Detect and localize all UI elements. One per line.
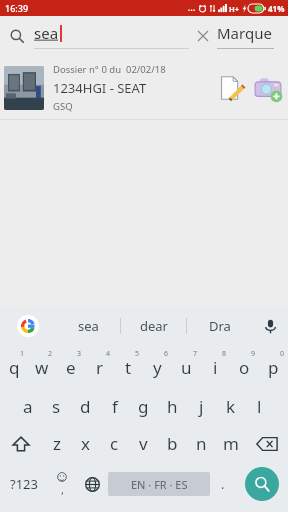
button[interactable]: y	[143, 347, 172, 388]
staticText: n	[196, 432, 207, 455]
staticText: t	[125, 356, 132, 379]
button[interactable]: x	[71, 425, 100, 462]
button[interactable]: Change language	[76, 462, 108, 506]
button[interactable]: b	[158, 425, 187, 462]
button[interactable]: z	[42, 425, 71, 462]
staticText: k	[226, 395, 236, 418]
staticText: o	[239, 356, 250, 379]
button[interactable]: Dossier n° 0 du 02/02/18	[0, 56, 288, 119]
button[interactable]: sea	[34, 23, 189, 49]
button[interactable]: r	[85, 347, 114, 388]
button[interactable]: t	[114, 347, 143, 388]
button[interactable]: Backspace	[245, 425, 288, 462]
button[interactable]: Clear	[189, 22, 217, 50]
staticText: ,	[61, 482, 64, 497]
staticText: Dossier n° 0 du 02/02/18	[53, 63, 166, 76]
staticText: f	[112, 395, 118, 418]
staticText: sea	[78, 317, 99, 335]
staticText: ?123	[10, 475, 38, 493]
staticText: 1234HGI - SEAT	[53, 79, 147, 97]
button[interactable]: j	[187, 388, 216, 425]
staticText: 2	[48, 349, 53, 359]
staticText: .	[221, 475, 225, 493]
staticText: x	[81, 432, 90, 455]
staticText: EN · FR · ES	[131, 477, 188, 492]
staticText: a	[23, 395, 33, 418]
button[interactable]: Voice input	[252, 307, 288, 345]
staticText: h	[167, 395, 178, 418]
staticText: u	[181, 356, 192, 379]
staticText: 8	[222, 349, 227, 359]
button[interactable]: Add photo	[250, 70, 286, 106]
button[interactable]: Search	[0, 19, 34, 53]
staticText: j	[199, 395, 204, 418]
staticText: 5	[135, 349, 140, 359]
button[interactable]: EN · FR · ES	[108, 472, 210, 496]
button[interactable]: h	[158, 388, 187, 425]
button[interactable]: f	[100, 388, 129, 425]
button[interactable]: sea	[56, 307, 120, 345]
staticText: GSQ	[53, 100, 73, 113]
staticText: m	[223, 432, 239, 455]
staticText: dear	[140, 317, 168, 335]
button[interactable]: k	[216, 388, 245, 425]
staticText: r	[96, 356, 104, 379]
staticText: Marque	[217, 23, 272, 43]
staticText: z	[53, 432, 61, 455]
button[interactable]: dear	[121, 307, 186, 345]
button[interactable]: o	[230, 347, 259, 388]
staticText: b	[167, 432, 178, 455]
staticText: sea	[34, 23, 59, 43]
button[interactable]: m	[216, 425, 245, 462]
staticText: 3	[77, 349, 82, 359]
staticText: 41%	[268, 3, 285, 14]
staticText: y	[153, 356, 162, 379]
staticText: q	[9, 356, 20, 379]
staticText: 1	[20, 349, 25, 359]
staticText: 4	[106, 349, 111, 359]
button[interactable]: w	[28, 347, 56, 388]
button[interactable]: Edit document	[216, 71, 250, 105]
staticText: s	[52, 395, 61, 418]
staticText: Dra	[209, 317, 231, 335]
button[interactable]: q	[0, 347, 28, 388]
staticText: d	[80, 395, 91, 418]
button[interactable]: Shift	[0, 425, 42, 462]
staticText: H+	[229, 4, 240, 14]
button[interactable]: Emoji	[48, 462, 76, 506]
staticText: 0	[280, 349, 285, 359]
button[interactable]: Search	[236, 462, 288, 506]
button[interactable]: n	[187, 425, 216, 462]
button[interactable]: s	[42, 388, 71, 425]
button[interactable]: ?123	[0, 462, 48, 506]
staticText: 16:39	[5, 2, 29, 14]
button[interactable]: a	[13, 388, 42, 425]
button[interactable]: g	[129, 388, 158, 425]
staticText: w	[35, 356, 49, 379]
button[interactable]: v	[129, 425, 158, 462]
staticText: g	[138, 395, 149, 418]
staticText: 9	[251, 349, 256, 359]
staticText: p	[268, 356, 279, 379]
staticText: i	[213, 356, 218, 379]
button[interactable]: Marque	[217, 23, 286, 49]
button[interactable]: u	[172, 347, 201, 388]
button[interactable]: d	[71, 388, 100, 425]
button[interactable]: Dra	[187, 307, 252, 345]
button[interactable]: e	[56, 347, 85, 388]
staticText: v	[139, 432, 148, 455]
button[interactable]: l	[245, 388, 274, 425]
button[interactable]: i	[201, 347, 230, 388]
button[interactable]: Google	[17, 315, 39, 337]
button[interactable]: .	[210, 462, 236, 506]
button[interactable]: p	[259, 347, 288, 388]
staticText: c	[110, 432, 119, 455]
staticText: 7	[193, 349, 198, 359]
button[interactable]: c	[100, 425, 129, 462]
staticText: l	[257, 395, 262, 418]
staticText: e	[66, 356, 76, 379]
staticText: 6	[164, 349, 169, 359]
